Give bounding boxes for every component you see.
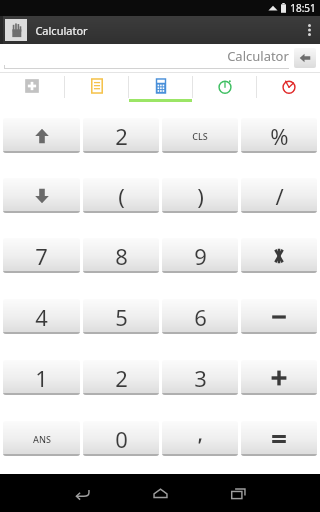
button[interactable]: ( — [83, 178, 159, 213]
staticText: ) — [197, 181, 204, 211]
button[interactable]: ANS — [3, 421, 80, 456]
button[interactable]: Calculator — [4, 44, 289, 72]
button[interactable]: STAR — [241, 238, 317, 273]
button[interactable]: Home — [142, 475, 178, 511]
staticText: ( — [118, 181, 125, 211]
button[interactable]: PLUS — [241, 360, 317, 395]
button[interactable]: CLS — [162, 118, 238, 153]
staticText: Calculator — [227, 47, 289, 65]
button[interactable]: Add — [0, 72, 64, 102]
button[interactable]: Calculator — [129, 72, 192, 102]
button[interactable]: 2 — [83, 360, 159, 395]
staticText: 6 — [194, 302, 207, 332]
button[interactable]: 9 — [162, 238, 238, 273]
button[interactable]: % — [241, 118, 317, 153]
button[interactable]: COMMA — [162, 421, 238, 456]
button[interactable]: 1 — [3, 360, 80, 395]
staticText: CLS — [192, 130, 208, 142]
button[interactable]: 5 — [83, 299, 159, 334]
staticText: Calculator — [35, 23, 88, 38]
staticText: / — [275, 181, 284, 211]
button[interactable]: 7 — [3, 238, 80, 273]
button[interactable]: MINUS — [241, 299, 317, 334]
staticText: 9 — [194, 241, 207, 271]
button[interactable]: 6 — [162, 299, 238, 334]
staticText: 8 — [115, 241, 128, 271]
button[interactable]: Notes — [65, 72, 128, 102]
staticText: 18:51 — [290, 1, 316, 15]
button[interactable]: DOWN — [3, 178, 80, 213]
button[interactable]: App icon — [5, 19, 27, 41]
staticText: 4 — [35, 302, 48, 332]
staticText: ANS — [33, 433, 51, 445]
button[interactable]: 3 — [162, 360, 238, 395]
staticText: 0 — [115, 424, 128, 454]
button[interactable]: EQ — [241, 421, 317, 456]
button[interactable]: 0 — [83, 421, 159, 456]
button[interactable]: Timer — [193, 72, 256, 102]
staticText: 2 — [115, 121, 128, 151]
button[interactable]: ) — [162, 178, 238, 213]
staticText: 7 — [35, 241, 48, 271]
staticText: 5 — [115, 302, 128, 332]
staticText: 3 — [194, 363, 207, 393]
staticText: 1 — [35, 363, 48, 393]
staticText: 2 — [115, 363, 128, 393]
button[interactable]: 2 — [83, 118, 159, 153]
button[interactable]: Stopwatch — [257, 72, 320, 102]
button[interactable]: 4 — [3, 299, 80, 334]
button[interactable]: Recents — [220, 475, 256, 511]
button[interactable]: UP — [3, 118, 80, 153]
button[interactable]: / — [241, 178, 317, 213]
button[interactable]: 8 — [83, 238, 159, 273]
button[interactable]: More options — [298, 16, 320, 44]
button[interactable]: Enter — [294, 48, 316, 68]
staticText: % — [270, 121, 289, 151]
button[interactable]: Back — [64, 475, 100, 511]
